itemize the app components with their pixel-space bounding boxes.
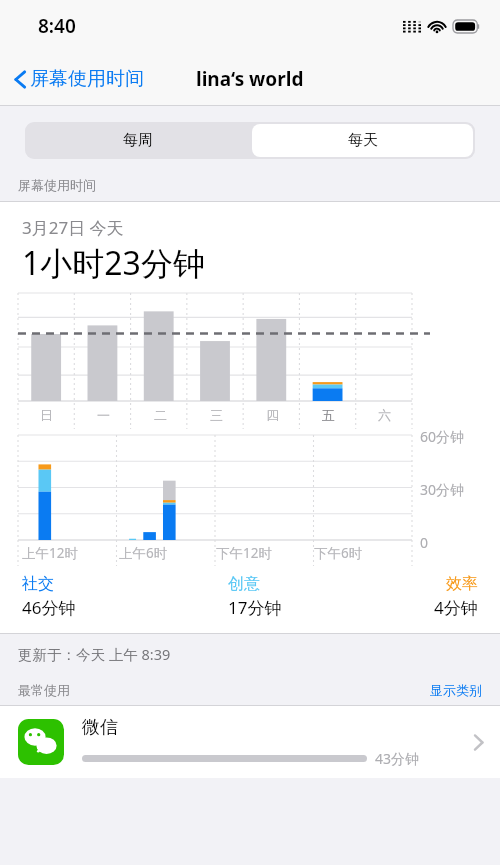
staticText: 每周 bbox=[123, 131, 153, 150]
staticText: 五 bbox=[322, 407, 335, 423]
button[interactable]: 微信 bbox=[0, 706, 500, 778]
staticText: 四 bbox=[266, 407, 279, 423]
staticText: 二 bbox=[154, 407, 167, 423]
staticText: 日 bbox=[40, 407, 53, 423]
other: Details bbox=[473, 733, 484, 752]
staticText: 更新于：今天 上午 8:39 bbox=[18, 644, 171, 664]
staticText: 创意 bbox=[228, 574, 260, 594]
staticText: 4分钟 bbox=[434, 596, 478, 619]
staticText: 3月27日 今天 bbox=[22, 216, 124, 239]
button[interactable]: 显示类别 bbox=[430, 682, 482, 698]
other: Back bbox=[14, 69, 27, 90]
staticText: 一 bbox=[97, 407, 110, 423]
staticText: 三 bbox=[210, 407, 223, 423]
staticText: lina‘s world bbox=[196, 66, 304, 92]
staticText: 17分钟 bbox=[228, 596, 282, 619]
staticText: 显示类别 bbox=[430, 682, 482, 698]
staticText: 8:40 bbox=[38, 13, 76, 39]
button[interactable]: 每天 bbox=[252, 124, 473, 157]
staticText: 30分钟 bbox=[420, 480, 465, 499]
staticText: 下午12时 bbox=[216, 544, 272, 562]
staticText: 0 bbox=[420, 533, 429, 552]
staticText: 上午12时 bbox=[22, 544, 78, 562]
staticText: 六 bbox=[378, 407, 391, 423]
staticText: 社交 bbox=[22, 574, 54, 594]
button[interactable]: Back bbox=[14, 67, 144, 91]
staticText: 上午6时 bbox=[119, 544, 168, 562]
staticText: 微信 bbox=[82, 716, 118, 739]
staticText: 1小时23分钟 bbox=[22, 241, 205, 285]
staticText: 43分钟 bbox=[375, 749, 420, 768]
staticText: 下午6时 bbox=[314, 544, 363, 562]
staticText: 屏幕使用时间 bbox=[30, 67, 144, 91]
staticText: 最常使用 bbox=[18, 682, 70, 698]
button[interactable]: 每周 bbox=[25, 122, 250, 159]
staticText: 46分钟 bbox=[22, 596, 76, 619]
staticText: 60分钟 bbox=[420, 427, 465, 446]
staticText: 效率 bbox=[446, 574, 478, 594]
staticText: 每天 bbox=[348, 131, 378, 150]
staticText: 屏幕使用时间 bbox=[18, 177, 96, 193]
